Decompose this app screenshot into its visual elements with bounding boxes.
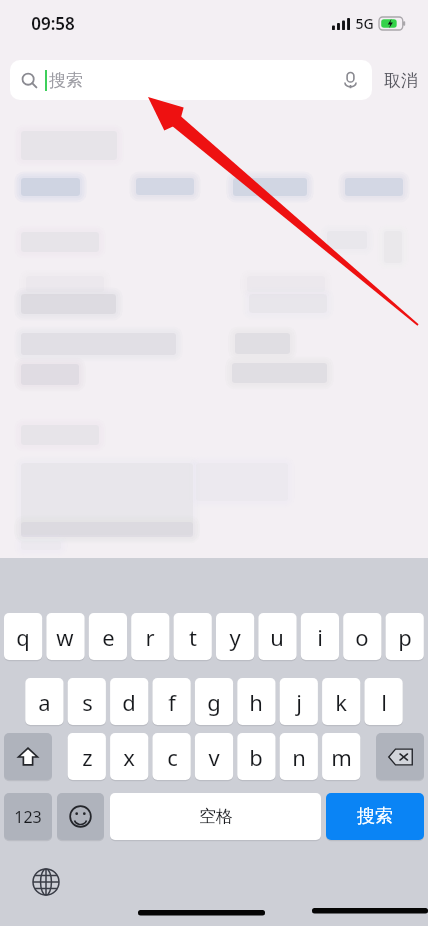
staticText: g	[207, 687, 221, 717]
button[interactable]: p	[386, 613, 424, 660]
staticText: k	[335, 687, 347, 717]
button[interactable]: w	[46, 613, 84, 660]
staticText: x	[123, 742, 135, 772]
staticText: 5G	[355, 14, 374, 33]
staticText: u	[270, 622, 284, 652]
staticText: j	[296, 687, 302, 717]
button[interactable]: 搜索	[326, 793, 424, 840]
button[interactable]: o	[343, 613, 381, 660]
button[interactable]: Backspace	[376, 733, 424, 780]
button[interactable]: f	[153, 678, 191, 725]
button[interactable]: l	[365, 678, 403, 725]
button[interactable]: 搜索	[10, 60, 372, 100]
staticText: b	[249, 742, 263, 772]
button[interactable]: x	[110, 733, 148, 780]
button[interactable]: u	[258, 613, 296, 660]
button[interactable]: r	[131, 613, 169, 660]
button[interactable]: 取消	[382, 66, 420, 95]
staticText: e	[102, 622, 115, 652]
staticText: 搜索	[49, 70, 83, 91]
staticText: l	[381, 687, 387, 717]
button[interactable]: g	[195, 678, 233, 725]
button[interactable]: 切换键盘	[30, 866, 62, 898]
button[interactable]: Emoji	[57, 793, 104, 840]
staticText: z	[82, 742, 93, 772]
button[interactable]: b	[237, 733, 275, 780]
button[interactable]: m	[322, 733, 360, 780]
button[interactable]: c	[153, 733, 191, 780]
button[interactable]: e	[89, 613, 127, 660]
button[interactable]: k	[322, 678, 360, 725]
staticText: o	[355, 622, 369, 652]
staticText: m	[331, 742, 352, 772]
staticText: a	[38, 687, 51, 717]
staticText: 空格	[199, 806, 233, 827]
button[interactable]: s	[68, 678, 106, 725]
staticText: q	[16, 622, 30, 652]
staticText: p	[398, 622, 412, 652]
staticText: r	[145, 622, 155, 652]
button[interactable]: 语音搜索	[337, 67, 363, 93]
staticText: 123	[14, 806, 42, 828]
button[interactable]: h	[237, 678, 275, 725]
button[interactable]: q	[4, 613, 42, 660]
staticText: c	[167, 742, 178, 772]
button[interactable]: 空格	[110, 793, 321, 840]
staticText: d	[122, 687, 136, 717]
button[interactable]: z	[68, 733, 106, 780]
staticText: 搜索	[357, 805, 393, 828]
button[interactable]: 123	[4, 793, 52, 840]
button[interactable]: y	[216, 613, 254, 660]
button[interactable]: a	[25, 678, 63, 725]
staticText: y	[229, 622, 241, 652]
button[interactable]: i	[301, 613, 339, 660]
staticText: f	[168, 687, 176, 717]
staticText: h	[249, 687, 263, 717]
staticText: w	[56, 622, 74, 652]
staticText: i	[317, 622, 323, 652]
button[interactable]: j	[280, 678, 318, 725]
button[interactable]: t	[174, 613, 212, 660]
staticText: s	[82, 687, 93, 717]
staticText: 09:58	[31, 12, 75, 35]
staticText: 取消	[384, 70, 418, 91]
button[interactable]: v	[195, 733, 233, 780]
staticText: v	[208, 742, 220, 772]
staticText: n	[292, 742, 306, 772]
button[interactable]: Shift	[4, 733, 52, 780]
button[interactable]: n	[280, 733, 318, 780]
button[interactable]: d	[110, 678, 148, 725]
staticText: t	[189, 622, 197, 652]
